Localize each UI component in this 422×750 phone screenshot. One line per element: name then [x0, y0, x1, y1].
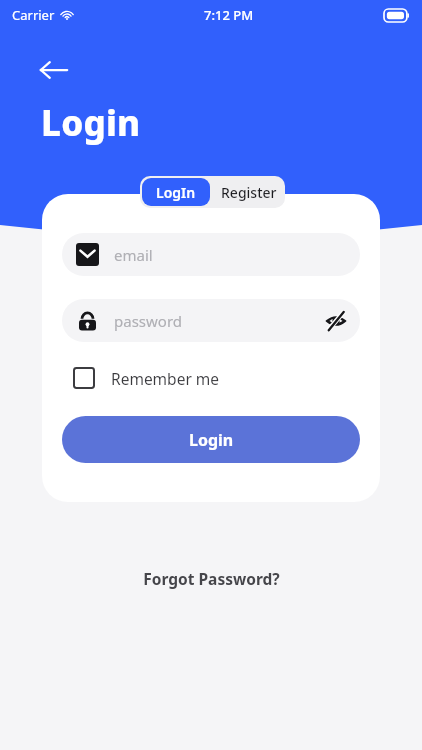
button[interactable]: email [62, 233, 360, 276]
staticText: Remember me [111, 368, 220, 389]
button[interactable]: Show password [318, 303, 354, 339]
button[interactable]: Login [62, 416, 360, 463]
staticText: password [114, 311, 182, 331]
staticText: Register [221, 183, 277, 202]
staticText: Login [41, 99, 141, 147]
staticText: Forgot Password? [143, 568, 280, 589]
button[interactable]: Back [34, 50, 74, 90]
button[interactable]: password [62, 299, 360, 342]
staticText: Login [189, 429, 234, 451]
button[interactable]: LogIn [142, 178, 210, 206]
button[interactable]: Register [212, 176, 285, 208]
staticText: 7:12 PM [204, 6, 254, 24]
staticText: LogIn [156, 183, 196, 202]
button[interactable]: Remember me [62, 361, 220, 395]
staticText: email [114, 245, 153, 265]
staticText: Carrier [12, 6, 55, 24]
button[interactable]: Forgot Password? [131, 562, 292, 595]
